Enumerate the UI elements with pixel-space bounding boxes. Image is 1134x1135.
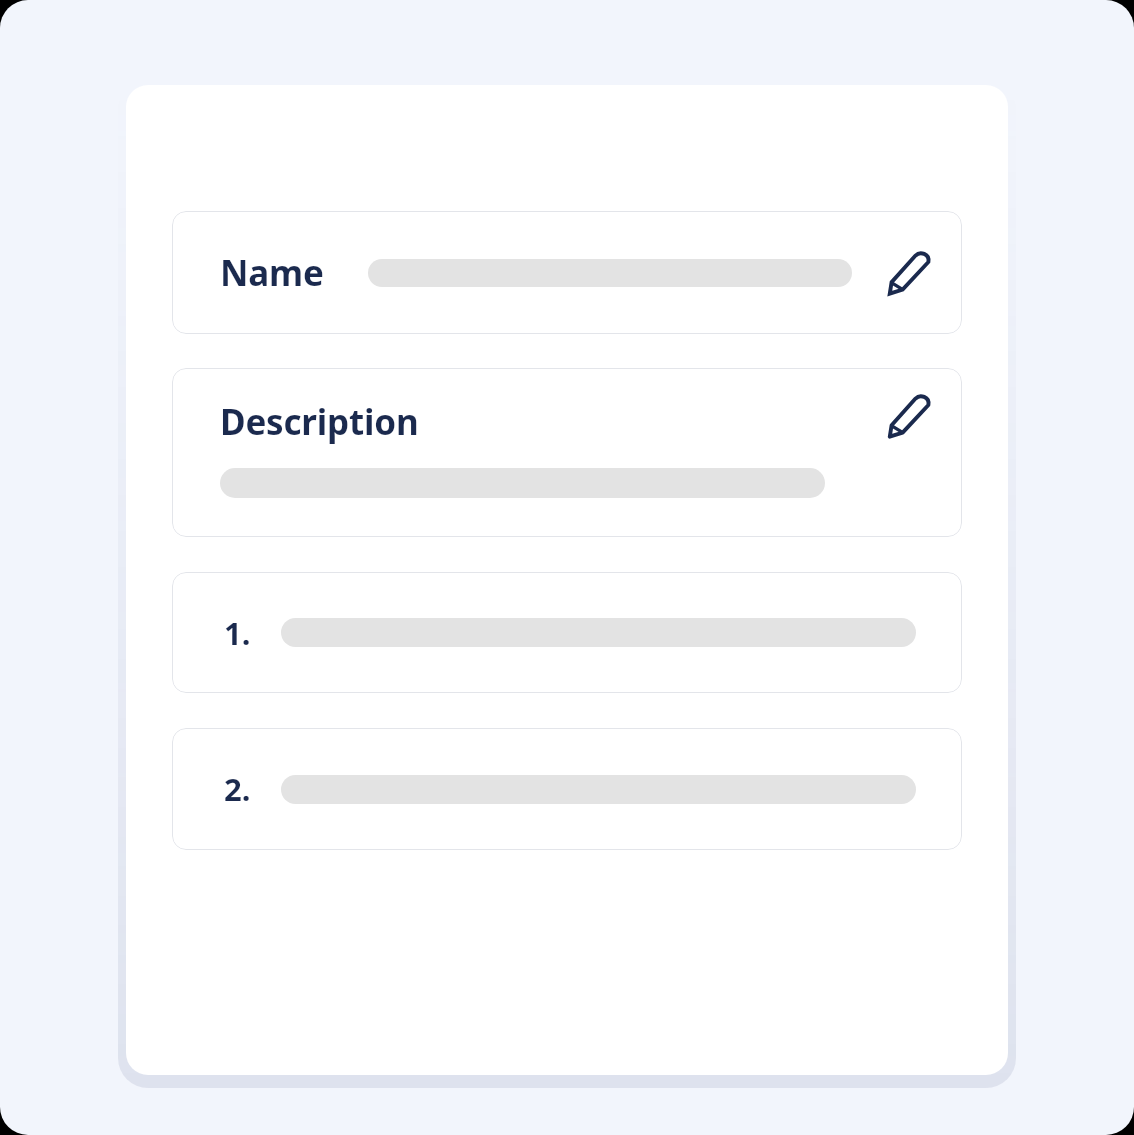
button[interactable]: Edit description — [884, 390, 936, 442]
staticText: 1. — [224, 612, 251, 654]
button[interactable]: 2. — [172, 728, 962, 850]
staticText: Description — [220, 398, 419, 446]
staticText: Name — [220, 249, 324, 297]
button[interactable]: 1. — [172, 572, 962, 693]
staticText: 2. — [224, 768, 251, 810]
button[interactable]: Description — [172, 368, 962, 537]
button[interactable]: Edit name — [884, 247, 936, 299]
button[interactable]: Name — [172, 211, 962, 334]
